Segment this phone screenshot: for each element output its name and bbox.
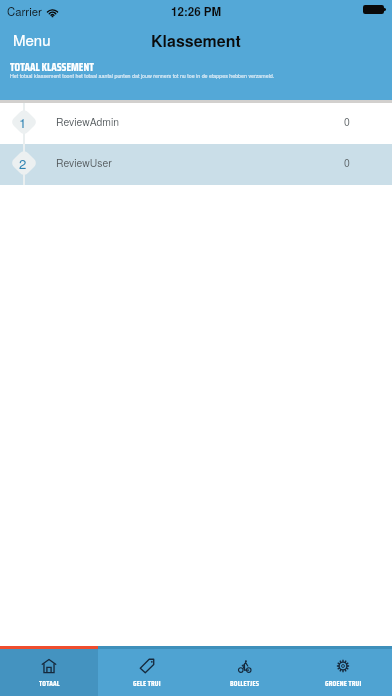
staticText: Carrier [7, 3, 42, 19]
button[interactable]: Groene trui [294, 649, 392, 696]
staticText: 2 [19, 154, 27, 173]
button[interactable]: Totaal [0, 649, 98, 696]
button[interactable]: Menu [5, 25, 59, 54]
button[interactable]: 1 [0, 103, 392, 144]
staticText: 1 [19, 113, 27, 132]
staticText: ReviewAdmin [56, 114, 120, 129]
staticText: Klassement [151, 29, 241, 52]
staticText: 0 [344, 155, 350, 170]
staticText: TOTAAL KLASSEMENT [10, 59, 94, 76]
staticText: GROENE TRUI [325, 678, 362, 689]
staticText: ReviewUser [56, 155, 112, 170]
staticText: GELE TRUI [133, 678, 161, 689]
button[interactable]: Gele trui [98, 649, 196, 696]
staticText: Menu [13, 29, 51, 50]
button[interactable]: Bolletjes [196, 649, 294, 696]
staticText: TOTAAL [39, 678, 60, 689]
staticText: BOLLETJES [230, 678, 260, 689]
staticText: 0 [344, 114, 350, 129]
button[interactable]: 2 [0, 144, 392, 185]
staticText: 12:26 PM [171, 3, 222, 20]
staticText: Het totaal klassement toont het totaal a… [10, 72, 275, 80]
